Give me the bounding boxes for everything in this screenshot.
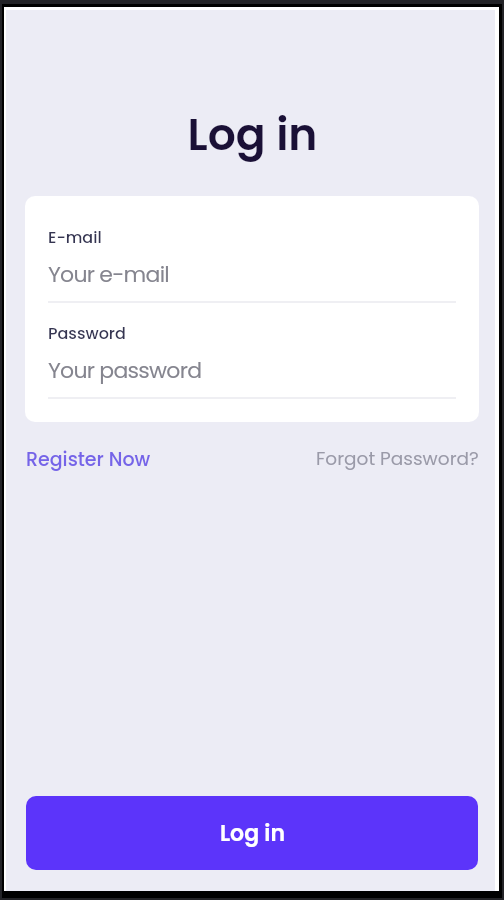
button[interactable]: E-mail xyxy=(48,226,456,303)
button[interactable]: Forgot Password? xyxy=(316,446,479,472)
staticText: Your e-mail xyxy=(48,259,169,290)
staticText: Register Now xyxy=(26,446,151,473)
staticText: Log in xyxy=(10,104,495,166)
button[interactable]: Password xyxy=(48,322,456,399)
button[interactable]: Register Now xyxy=(26,446,151,473)
staticText: Password xyxy=(48,322,126,344)
staticText: Forgot Password? xyxy=(316,446,479,472)
staticText: Your password xyxy=(48,355,202,386)
staticText: E-mail xyxy=(48,226,102,248)
button[interactable]: Log in xyxy=(26,796,478,870)
staticText: Log in xyxy=(220,818,285,849)
